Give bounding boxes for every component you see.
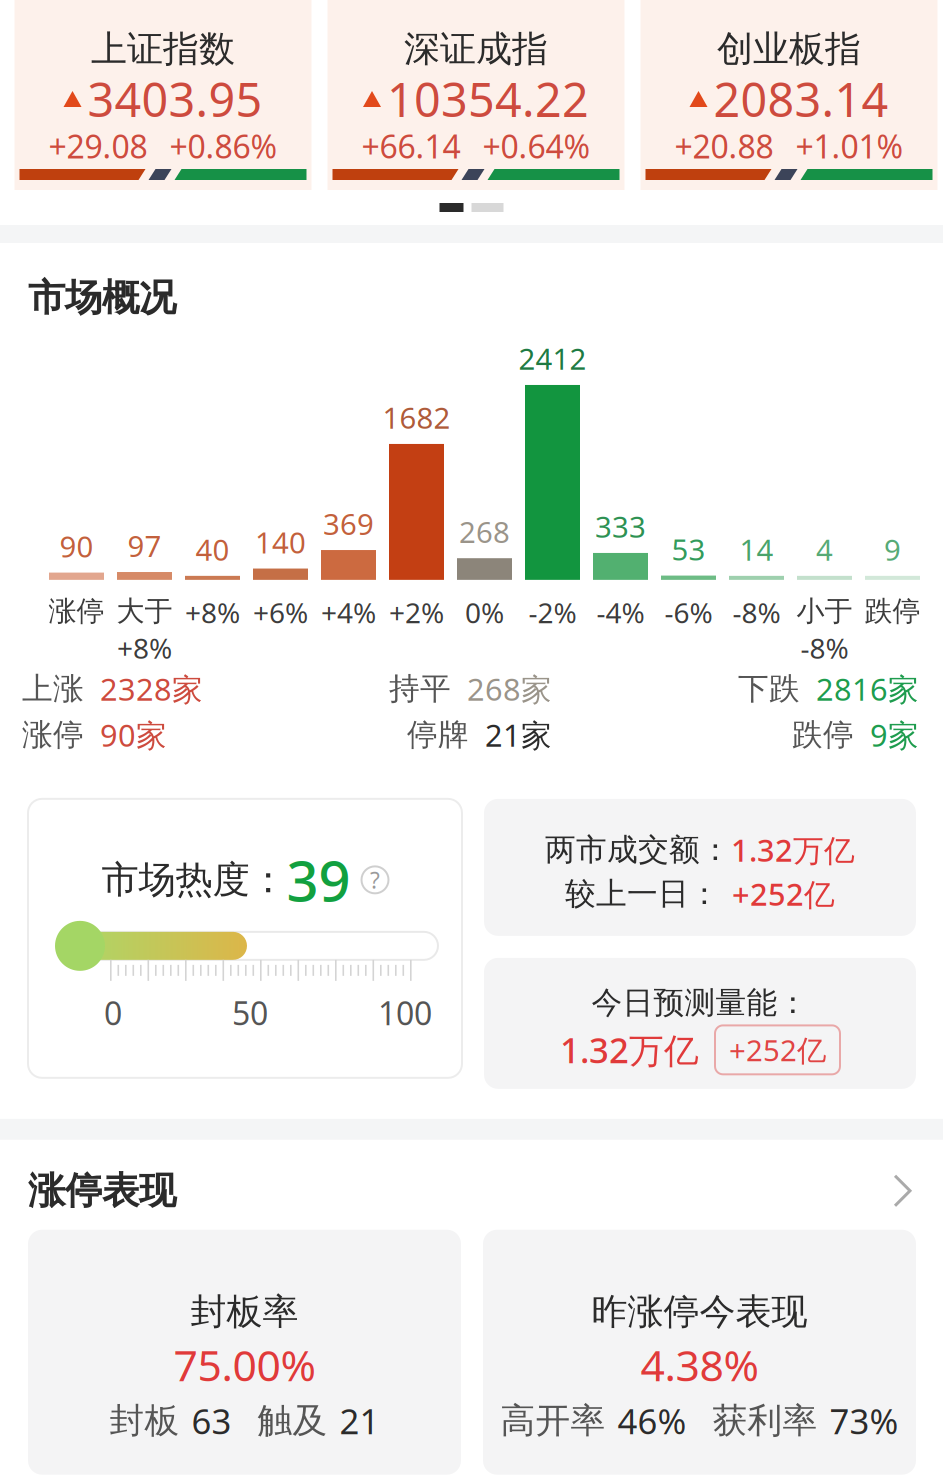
button[interactable]: 创业板指 (640, 0, 937, 190)
staticText: -4% (596, 594, 644, 631)
staticText: 上涨 (22, 670, 84, 708)
staticText: +8% (185, 594, 240, 631)
staticText: 369 (323, 504, 374, 543)
staticText: +252亿 (729, 1030, 826, 1069)
staticText: 创业板指 (717, 27, 861, 71)
staticText: 10354.22 (387, 68, 589, 130)
staticText: 4 (816, 530, 833, 569)
staticText: 0 (104, 992, 122, 1034)
staticText: -8% (800, 629, 848, 666)
staticText: 21家 (485, 714, 552, 755)
staticText: 下跌 (738, 670, 800, 708)
staticText: +66.14 (361, 125, 460, 167)
staticText: +29.08 (48, 125, 147, 167)
staticText: -6% (664, 594, 712, 631)
button[interactable]: 深证成指 (327, 0, 624, 190)
staticText: +8% (117, 629, 172, 666)
staticText: -8% (732, 594, 780, 631)
staticText: 9 (884, 530, 901, 569)
staticText: 两市成交额： (545, 831, 731, 869)
staticText: 53 (671, 530, 705, 569)
staticText: 触及 (257, 1399, 327, 1442)
staticText: 4.38% (640, 1336, 758, 1393)
staticText: 涨停 (22, 716, 84, 754)
staticText: 市场概况 (28, 275, 176, 321)
staticText: ? (370, 865, 380, 895)
staticText: 1.32万亿 (731, 829, 855, 870)
staticText: 2328家 (100, 668, 203, 709)
staticText: 市场热度： (101, 857, 286, 903)
staticText: 高开率 (500, 1399, 605, 1442)
staticText: +6% (253, 594, 308, 631)
staticText: 39 (286, 843, 350, 917)
staticText: 268 (459, 512, 510, 551)
staticText: 46% (617, 1398, 686, 1444)
staticText: 昨涨停今表现 (591, 1290, 807, 1334)
staticText: 0% (465, 594, 504, 631)
staticText: 50 (232, 992, 268, 1034)
staticText: +1.01% (795, 125, 903, 167)
staticText: 获利率 (712, 1399, 817, 1442)
staticText: 14 (739, 530, 773, 569)
staticText: 跌停 (792, 716, 854, 754)
staticText: 21 (339, 1398, 379, 1444)
staticText: 90家 (100, 714, 167, 755)
staticText: +20.88 (674, 125, 773, 167)
staticText: 75.00% (173, 1336, 315, 1393)
staticText: 268家 (467, 668, 552, 709)
staticText: 深证成指 (404, 27, 548, 71)
staticText: 1.32万亿 (560, 1027, 699, 1073)
staticText: 3403.95 (87, 68, 262, 130)
button[interactable]: 上证指数 (14, 0, 311, 190)
staticText: 90 (59, 527, 93, 566)
staticText: 封板 (109, 1399, 179, 1442)
staticText: 今日预测量能： (591, 984, 808, 1022)
staticText: 封板率 (190, 1290, 298, 1334)
staticText: 持平 (389, 670, 451, 708)
staticText: 140 (255, 523, 306, 562)
staticText: 上证指数 (91, 27, 235, 71)
staticText: +2% (389, 594, 444, 631)
staticText: 63 (191, 1398, 231, 1444)
staticText: 9家 (870, 714, 919, 755)
staticText: 40 (195, 530, 229, 569)
staticText: 73% (829, 1398, 898, 1444)
staticText: 大于 (116, 594, 172, 628)
staticText: +4% (321, 594, 376, 631)
staticText: 2412 (518, 339, 586, 378)
staticText: 较上一日： (565, 875, 720, 913)
staticText: 小于 (796, 594, 852, 628)
staticText: 跌停 (864, 594, 920, 628)
staticText: +0.64% (482, 125, 590, 167)
staticText: 停牌 (407, 716, 469, 754)
staticText: 1682 (382, 398, 450, 437)
staticText: 333 (595, 507, 646, 546)
staticText: 97 (127, 526, 161, 565)
staticText: 2816家 (816, 668, 919, 709)
staticText: 2083.14 (713, 68, 888, 130)
staticText: 100 (378, 992, 432, 1034)
staticText: +252亿 (732, 873, 835, 914)
button[interactable]: 涨停表现 (0, 1140, 943, 1230)
staticText: +0.86% (169, 125, 277, 167)
staticText: -2% (528, 594, 576, 631)
staticText: 涨停表现 (28, 1168, 176, 1214)
staticText: 涨停 (48, 594, 104, 628)
